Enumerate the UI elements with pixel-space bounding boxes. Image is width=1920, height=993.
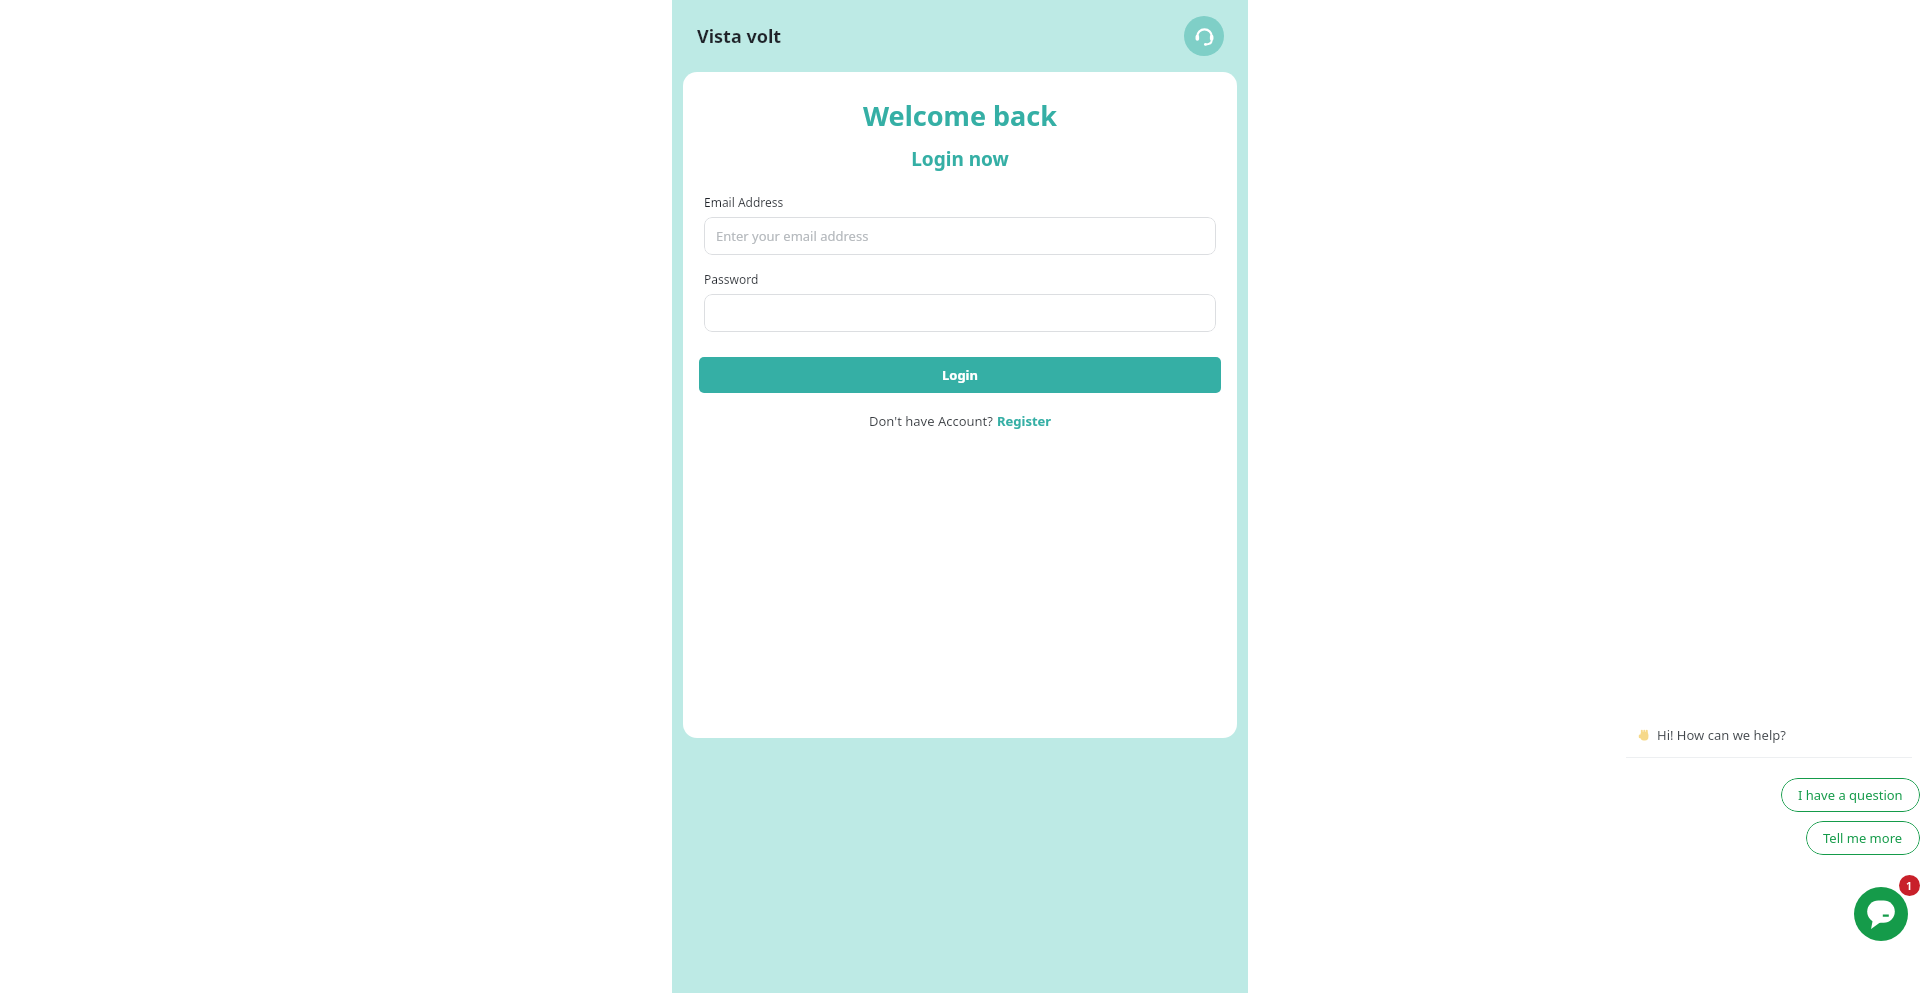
- staticText: 1: [1906, 878, 1913, 893]
- staticText: Password: [704, 271, 759, 287]
- button[interactable]: Customer support: [1184, 16, 1224, 56]
- button[interactable]: Tell me more: [1806, 821, 1920, 855]
- staticText: Tell me more: [1823, 829, 1903, 847]
- staticText: Don't have Account?: [869, 412, 997, 430]
- button[interactable]: [704, 294, 1216, 332]
- staticText: Login now: [911, 146, 1009, 172]
- staticText: I have a question: [1798, 786, 1903, 804]
- button[interactable]: Login: [699, 357, 1221, 393]
- staticText: Register: [997, 412, 1052, 430]
- staticText: Hi! How can we help?: [1657, 726, 1786, 744]
- button[interactable]: Enter your email address: [704, 217, 1216, 255]
- staticText: Welcome back: [863, 97, 1057, 134]
- staticText: Login: [942, 366, 978, 384]
- button[interactable]: Register: [997, 412, 1052, 430]
- staticText: Vista volt: [697, 24, 782, 49]
- button[interactable]: I have a question: [1781, 778, 1920, 812]
- staticText: Email Address: [704, 194, 784, 210]
- staticText: Enter your email address: [716, 227, 869, 245]
- button[interactable]: Open chat: [1854, 887, 1908, 941]
